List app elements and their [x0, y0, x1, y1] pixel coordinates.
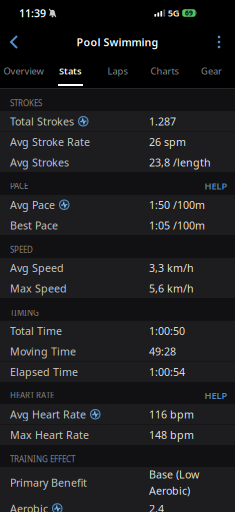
staticText: 1.287: [149, 114, 176, 128]
button[interactable]: HELP: [204, 389, 227, 401]
staticText: Charts: [150, 65, 178, 77]
staticText: TIMING: [10, 307, 39, 318]
staticText: 1:00:54: [149, 365, 185, 379]
staticText: 3,3 km/h: [149, 261, 194, 275]
button[interactable]: Laps: [94, 58, 141, 88]
staticText: 5,6 km/h: [149, 281, 194, 295]
staticText: 2.4: [149, 501, 164, 512]
staticText: 5G: [168, 7, 180, 19]
button[interactable]: Back: [0, 26, 24, 58]
button[interactable]: HELP: [204, 180, 227, 192]
staticText: Laps: [107, 65, 127, 77]
staticText: Pool Swimming: [76, 35, 158, 49]
button[interactable]: Overview: [0, 58, 47, 88]
staticText: HEART RATE: [10, 390, 54, 401]
staticText: STROKES: [10, 98, 42, 108]
staticText: Gear: [201, 65, 222, 77]
staticText: 148 bpm: [149, 428, 194, 442]
staticText: HELP: [204, 180, 227, 192]
staticText: Avg Pace: [10, 198, 55, 212]
staticText: Max Heart Rate: [10, 428, 89, 442]
staticText: 69: [185, 9, 193, 17]
staticText: Moving Time: [10, 344, 76, 358]
button[interactable]: More: [207, 26, 231, 58]
staticText: Avg Stroke Rate: [10, 135, 90, 149]
staticText: Avg Heart Rate: [10, 407, 86, 421]
staticText: Total Time: [10, 324, 62, 338]
staticText: Aerobic: [10, 501, 48, 512]
staticText: Elapsed Time: [10, 365, 78, 379]
staticText: Avg Strokes: [10, 155, 69, 169]
staticText: 23,8 /length: [149, 155, 211, 169]
staticText: 1:50 /100m: [149, 198, 205, 212]
staticText: Primary Benefit: [10, 475, 87, 490]
staticText: TRAINING EFFECT: [10, 454, 75, 464]
staticText: Best Pace: [10, 218, 58, 232]
staticText: 11:39: [19, 6, 46, 20]
staticText: HELP: [204, 389, 227, 401]
button[interactable]: Stats: [47, 58, 94, 88]
staticText: PACE: [10, 180, 28, 191]
staticText: Total Strokes: [10, 114, 74, 128]
staticText: Avg Speed: [10, 261, 64, 275]
staticText: Overview: [3, 65, 43, 77]
staticText: 1:00:50: [149, 324, 185, 338]
staticText: Base (Low Aerobic): [149, 467, 199, 498]
button[interactable]: Charts: [141, 58, 188, 88]
staticText: 49:28: [149, 344, 176, 358]
staticText: 116 bpm: [149, 407, 194, 421]
staticText: 26 spm: [149, 135, 186, 149]
staticText: Stats: [59, 65, 82, 77]
staticText: Max Speed: [10, 281, 67, 295]
staticText: SPEED: [10, 244, 33, 255]
staticText: 1:05 /100m: [149, 218, 205, 232]
button[interactable]: Gear: [188, 58, 235, 88]
